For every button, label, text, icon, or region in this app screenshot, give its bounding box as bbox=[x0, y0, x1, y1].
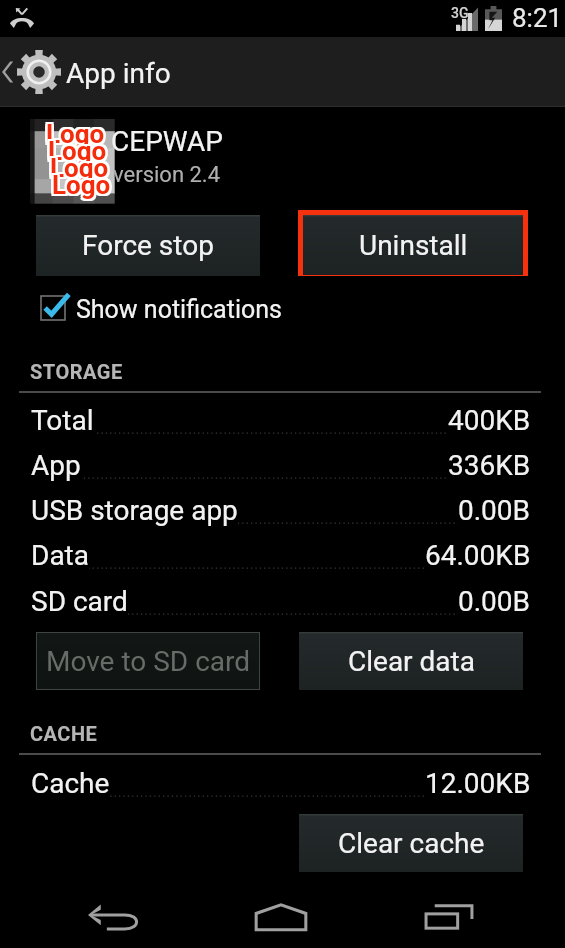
staticText: Show notifications bbox=[76, 295, 282, 324]
staticText: Logo bbox=[52, 155, 111, 185]
staticText: Logo bbox=[44, 117, 103, 147]
button[interactable]: Back bbox=[29, 886, 198, 948]
staticText: 3G bbox=[451, 5, 469, 21]
staticText: Clear data bbox=[348, 645, 475, 678]
staticText: Total bbox=[31, 404, 94, 437]
staticText: USB storage app bbox=[31, 494, 238, 527]
button[interactable]: Recent apps bbox=[365, 886, 534, 948]
staticText: Logo bbox=[48, 153, 107, 183]
staticText: Logo bbox=[54, 168, 113, 198]
staticText: Uninstall bbox=[359, 229, 468, 262]
staticText: Logo bbox=[46, 121, 105, 151]
staticText: Logo bbox=[44, 121, 103, 151]
staticText: Logo bbox=[52, 151, 111, 181]
button[interactable]: Clear data bbox=[299, 632, 523, 690]
staticText: Logo bbox=[52, 172, 111, 202]
staticText: Logo bbox=[54, 172, 113, 202]
staticText: Logo bbox=[46, 117, 105, 147]
staticText: Logo bbox=[50, 136, 109, 166]
staticText: SD card bbox=[31, 585, 128, 618]
staticText: Logo bbox=[48, 138, 107, 168]
button[interactable]: Uninstall bbox=[303, 215, 523, 275]
staticText: CACHE bbox=[30, 722, 98, 745]
staticText: Logo bbox=[48, 151, 107, 181]
staticText: Logo bbox=[44, 119, 103, 149]
staticText: Logo bbox=[46, 134, 105, 164]
staticText: Logo bbox=[46, 136, 105, 166]
staticText: Logo bbox=[46, 119, 105, 149]
button[interactable]: Navigate up bbox=[0, 49, 66, 95]
staticText: Move to SD card bbox=[46, 645, 251, 678]
staticText: Logo bbox=[50, 170, 109, 200]
button[interactable]: Show notifications bbox=[41, 293, 282, 325]
button[interactable]: Force stop bbox=[36, 215, 260, 276]
staticText: Logo bbox=[50, 138, 109, 168]
staticText: 0.00B bbox=[458, 585, 531, 618]
staticText: Logo bbox=[48, 134, 107, 164]
staticText: Logo bbox=[50, 172, 109, 202]
staticText: Logo bbox=[46, 138, 105, 168]
staticText: Logo bbox=[50, 153, 109, 183]
staticText: Force stop bbox=[82, 229, 214, 262]
staticText: version 2.4 bbox=[113, 162, 221, 188]
staticText: Logo bbox=[52, 170, 111, 200]
staticText: App info bbox=[66, 57, 171, 90]
staticText: Logo bbox=[50, 155, 109, 185]
staticText: Logo bbox=[48, 117, 107, 147]
staticText: Clear cache bbox=[338, 827, 485, 860]
staticText: 336KB bbox=[448, 449, 531, 482]
staticText: 0.00B bbox=[458, 494, 531, 527]
staticText: Logo bbox=[54, 170, 113, 200]
staticText: Logo bbox=[52, 153, 111, 183]
button[interactable]: Move to SD card bbox=[36, 632, 260, 690]
staticText: 64.00KB bbox=[425, 539, 531, 572]
staticText: Logo bbox=[48, 136, 107, 166]
staticText: Logo bbox=[50, 151, 109, 181]
button[interactable]: Clear cache bbox=[299, 814, 523, 872]
staticText: CEPWAP bbox=[111, 125, 223, 158]
staticText: Logo bbox=[48, 121, 107, 151]
staticText: Data bbox=[31, 539, 89, 572]
staticText: Logo bbox=[48, 155, 107, 185]
staticText: 12.00KB bbox=[425, 767, 531, 800]
staticText: Cache bbox=[31, 767, 110, 800]
button[interactable]: Home bbox=[196, 886, 365, 948]
staticText: Logo bbox=[50, 134, 109, 164]
staticText: Logo bbox=[52, 168, 111, 198]
staticText: 400KB bbox=[448, 404, 531, 437]
staticText: 8:21 bbox=[512, 3, 563, 33]
staticText: App bbox=[31, 449, 81, 482]
staticText: Logo bbox=[48, 119, 107, 149]
staticText: STORAGE bbox=[30, 360, 123, 383]
staticText: Logo bbox=[50, 168, 109, 198]
